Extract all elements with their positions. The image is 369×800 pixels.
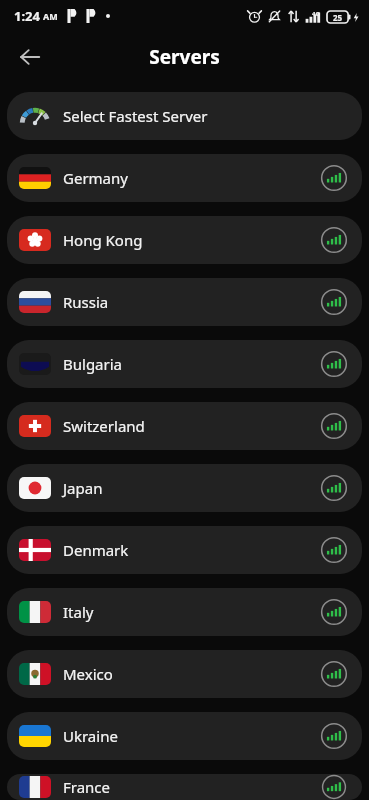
button[interactable]: Back <box>8 35 52 79</box>
button[interactable]: Select Fastest Server <box>7 92 362 140</box>
staticText: Mexico <box>63 664 113 684</box>
staticText: Bulgaria <box>63 354 123 374</box>
button[interactable]: Mexico <box>7 650 362 698</box>
button[interactable]: Ukraine <box>7 712 362 760</box>
staticText: Russia <box>63 292 109 312</box>
staticText: AM <box>43 10 58 22</box>
staticText: 1:24 <box>14 7 40 25</box>
button[interactable]: Hong Kong <box>7 216 362 264</box>
button[interactable]: Germany <box>7 154 362 202</box>
button[interactable]: Bulgaria <box>7 340 362 388</box>
staticText: Denmark <box>63 540 129 560</box>
button[interactable]: Italy <box>7 588 362 636</box>
staticText: Hong Kong <box>63 230 143 250</box>
staticText: Germany <box>63 168 128 188</box>
staticText: Servers <box>149 44 220 70</box>
staticText: 25 <box>333 12 343 23</box>
button[interactable]: Japan <box>7 464 362 512</box>
staticText: Ukraine <box>63 726 118 746</box>
staticText: Italy <box>63 602 94 622</box>
button[interactable]: Denmark <box>7 526 362 574</box>
button[interactable]: France <box>7 774 362 800</box>
button[interactable]: Russia <box>7 278 362 326</box>
button[interactable]: Switzerland <box>7 402 362 450</box>
staticText: 4G <box>312 10 320 18</box>
staticText: Select Fastest Server <box>63 106 208 126</box>
staticText: France <box>63 777 111 797</box>
staticText: Japan <box>63 478 103 498</box>
staticText: Switzerland <box>63 416 145 436</box>
